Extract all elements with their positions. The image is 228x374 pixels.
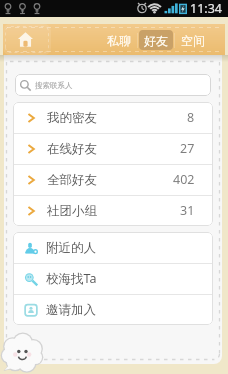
staticText: 校海找Ta <box>46 270 97 287</box>
button[interactable]: 邀请加入 <box>13 294 213 325</box>
staticText: 8 <box>187 109 195 126</box>
button[interactable]: 好友 <box>139 30 173 50</box>
button[interactable]: 附近的人 <box>13 232 213 263</box>
button[interactable]: 社团小组 <box>13 195 213 226</box>
button[interactable]: Home <box>3 24 51 55</box>
button[interactable]: 全部好友 <box>13 164 213 195</box>
staticText: 我的密友 <box>47 110 97 126</box>
staticText: 私聊 <box>107 33 131 48</box>
staticText: 31 <box>180 202 195 219</box>
button[interactable]: 在线好友 <box>13 133 213 164</box>
staticText: 空间 <box>181 33 205 48</box>
staticText: 27 <box>180 140 195 157</box>
staticText: 附近的人 <box>46 240 96 256</box>
button[interactable]: 空间 <box>176 30 210 50</box>
button[interactable]: 我的密友 <box>13 102 213 133</box>
staticText: 402 <box>173 171 195 188</box>
staticText: 全部好友 <box>47 172 97 188</box>
staticText: 搜索联系人 <box>35 81 73 90</box>
staticText: 邀请加入 <box>46 302 96 318</box>
staticText: 好友 <box>144 33 168 48</box>
button[interactable]: 搜索联系人 <box>15 74 211 96</box>
staticText: 11:34 <box>190 0 222 17</box>
staticText: 在线好友 <box>47 141 97 157</box>
staticText: 社团小组 <box>47 203 97 219</box>
button[interactable]: 校海找Ta <box>13 263 213 294</box>
button[interactable]: 私聊 <box>102 30 136 50</box>
